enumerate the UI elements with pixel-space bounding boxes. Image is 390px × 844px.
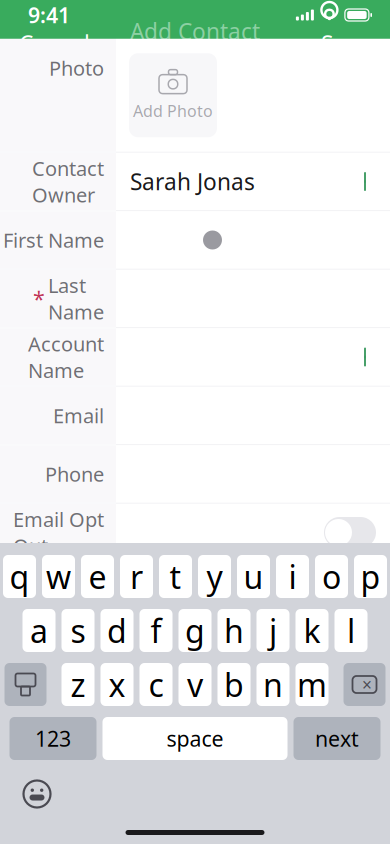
- button[interactable]: m: [295, 663, 328, 706]
- staticText: space: [166, 724, 223, 753]
- button[interactable]: Email Opt Out: [0, 504, 390, 561]
- staticText: First Name: [3, 227, 104, 253]
- staticText: n: [263, 663, 283, 706]
- button[interactable]: q: [3, 555, 36, 598]
- button[interactable]: b: [217, 663, 250, 706]
- button[interactable]: h: [217, 609, 250, 652]
- staticText: z: [70, 663, 85, 706]
- staticText: Last Name: [48, 272, 104, 325]
- staticText: Sarah Jonas: [130, 166, 255, 196]
- button[interactable]: z: [61, 663, 94, 706]
- button[interactable]: Add Photo: [129, 53, 217, 137]
- button[interactable]: v: [178, 663, 211, 706]
- button[interactable]: g: [178, 609, 211, 652]
- staticText: e: [88, 555, 106, 598]
- button[interactable]: w: [42, 555, 75, 598]
- staticText: r: [130, 555, 143, 598]
- staticText: Account Name: [28, 330, 104, 383]
- staticText: i: [288, 555, 296, 598]
- staticText: d: [107, 609, 127, 652]
- button[interactable]: c: [139, 663, 172, 706]
- staticText: s: [70, 609, 85, 652]
- staticText: p: [360, 555, 380, 598]
- button[interactable]: t: [159, 555, 192, 598]
- staticText: l: [347, 609, 355, 652]
- button[interactable]: f: [139, 609, 172, 652]
- staticText: g: [185, 609, 205, 652]
- staticText: x: [108, 663, 125, 706]
- staticText: m: [297, 663, 327, 706]
- button[interactable]: s: [61, 609, 94, 652]
- staticText: Add Contact: [130, 16, 260, 46]
- staticText: Cancel: [19, 28, 90, 58]
- button[interactable]: p: [354, 555, 387, 598]
- button[interactable]: a: [22, 609, 55, 652]
- staticText: next: [315, 724, 359, 753]
- button[interactable]: u: [237, 555, 270, 598]
- staticText: Phone: [45, 461, 104, 487]
- button[interactable]: o: [315, 555, 348, 598]
- staticText: y: [206, 555, 222, 598]
- button[interactable]: Account Name: [0, 328, 390, 386]
- staticText: h: [224, 609, 244, 652]
- staticText: a: [30, 609, 48, 652]
- button[interactable]: r: [120, 555, 153, 598]
- staticText: q: [9, 555, 29, 598]
- button[interactable]: First Name: [0, 211, 390, 269]
- button[interactable]: *: [0, 270, 390, 327]
- staticText: 9:41: [28, 1, 70, 29]
- button[interactable]: i: [276, 555, 309, 598]
- button[interactable]: k: [295, 609, 328, 652]
- button[interactable]: n: [256, 663, 289, 706]
- staticText: c: [148, 663, 163, 706]
- button[interactable]: Emoji keyboard: [16, 773, 58, 815]
- button[interactable]: next: [293, 717, 380, 760]
- button[interactable]: e: [81, 555, 114, 598]
- staticText: w: [46, 555, 71, 598]
- staticText: Add Photo: [133, 100, 213, 121]
- button[interactable]: space: [102, 717, 287, 760]
- staticText: v: [187, 663, 203, 706]
- staticText: b: [224, 663, 244, 706]
- staticText: o: [322, 555, 341, 598]
- staticText: Email Opt Out: [13, 506, 104, 559]
- staticText: Standard: [156, 46, 234, 71]
- button[interactable]: Cancel: [7, 23, 102, 63]
- button[interactable]: y: [198, 555, 231, 598]
- staticText: Email: [53, 402, 104, 429]
- button[interactable]: Contact Owner: [0, 153, 390, 210]
- button[interactable]: Phone: [0, 445, 390, 503]
- staticText: 123: [35, 724, 71, 753]
- staticText: Save: [321, 28, 371, 58]
- staticText: j: [269, 609, 277, 652]
- staticText: t: [169, 555, 181, 598]
- button[interactable]: Delete: [343, 663, 385, 706]
- staticText: Photo: [49, 55, 104, 81]
- button[interactable]: 123: [9, 717, 96, 760]
- staticText: Contact Owner: [32, 155, 104, 208]
- staticText: ×: [362, 673, 372, 696]
- staticText: k: [303, 609, 320, 652]
- button[interactable]: x: [100, 663, 133, 706]
- button[interactable]: Shift: [4, 663, 46, 706]
- staticText: f: [150, 609, 161, 652]
- button[interactable]: Email: [0, 387, 390, 444]
- staticText: u: [243, 555, 263, 598]
- button[interactable]: l: [334, 609, 367, 652]
- button[interactable]: j: [256, 609, 289, 652]
- staticText: *: [33, 284, 45, 313]
- button[interactable]: d: [100, 609, 133, 652]
- button[interactable]: Save: [309, 23, 383, 63]
